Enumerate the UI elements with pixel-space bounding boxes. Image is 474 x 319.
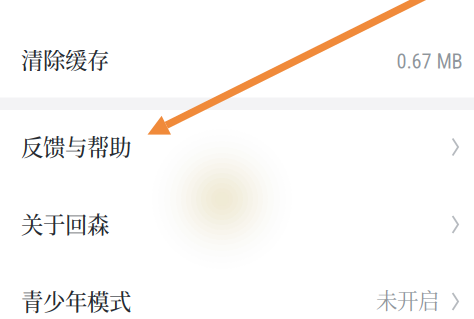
staticText: 关于回森: [21, 207, 109, 240]
staticText: 清除缓存: [21, 43, 109, 75]
staticText: 反馈与帮助: [21, 130, 131, 162]
staticText: 0.67 MB: [396, 49, 462, 73]
button[interactable]: 清除缓存: [0, 21, 474, 97]
staticText: 未开启: [376, 284, 439, 315]
button[interactable]: 青少年模式: [0, 262, 474, 319]
staticText: 青少年模式: [21, 284, 131, 317]
button[interactable]: 反馈与帮助: [0, 108, 474, 183]
button[interactable]: 关于回森: [0, 185, 474, 262]
